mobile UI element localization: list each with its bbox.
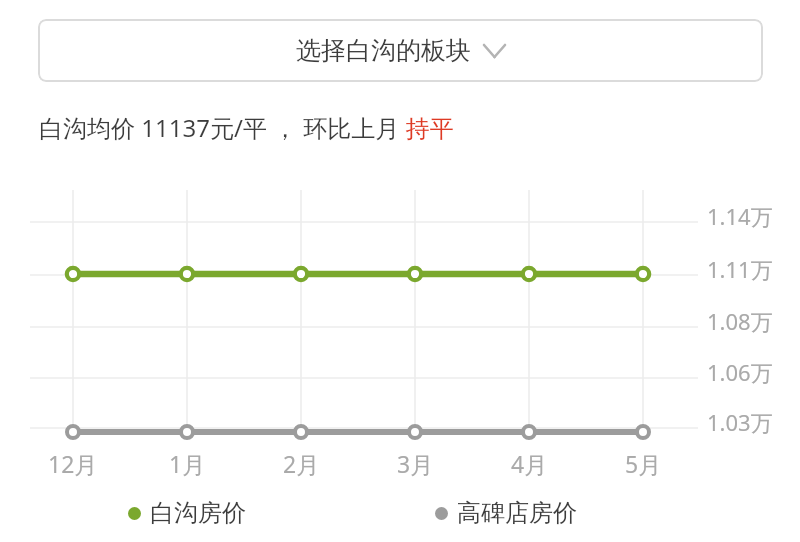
staticText: 1.14万 (707, 201, 773, 231)
button[interactable]: 高碑店房价 (435, 498, 577, 528)
staticText: 3月 (397, 448, 434, 479)
staticText: 选择白沟的板块 (296, 35, 471, 66)
staticText: 1.06万 (707, 357, 773, 387)
staticText: 2月 (283, 448, 320, 479)
staticText: 白沟房价 (150, 498, 246, 528)
staticText: 1.03万 (707, 407, 773, 437)
staticText: 4月 (511, 448, 548, 479)
staticText: 高碑店房价 (457, 498, 577, 528)
button[interactable]: 白沟房价 (128, 498, 246, 528)
staticText: 1月 (169, 448, 206, 479)
button[interactable]: 选择白沟的板块 (38, 19, 763, 82)
staticText: 5月 (625, 448, 662, 479)
staticText: 1.11万 (707, 254, 773, 284)
staticText: 1.08万 (707, 306, 773, 336)
staticText: 12月 (48, 448, 98, 479)
staticText: 白沟均价 11137元/平 ， 环比上月 持平 (39, 111, 454, 144)
